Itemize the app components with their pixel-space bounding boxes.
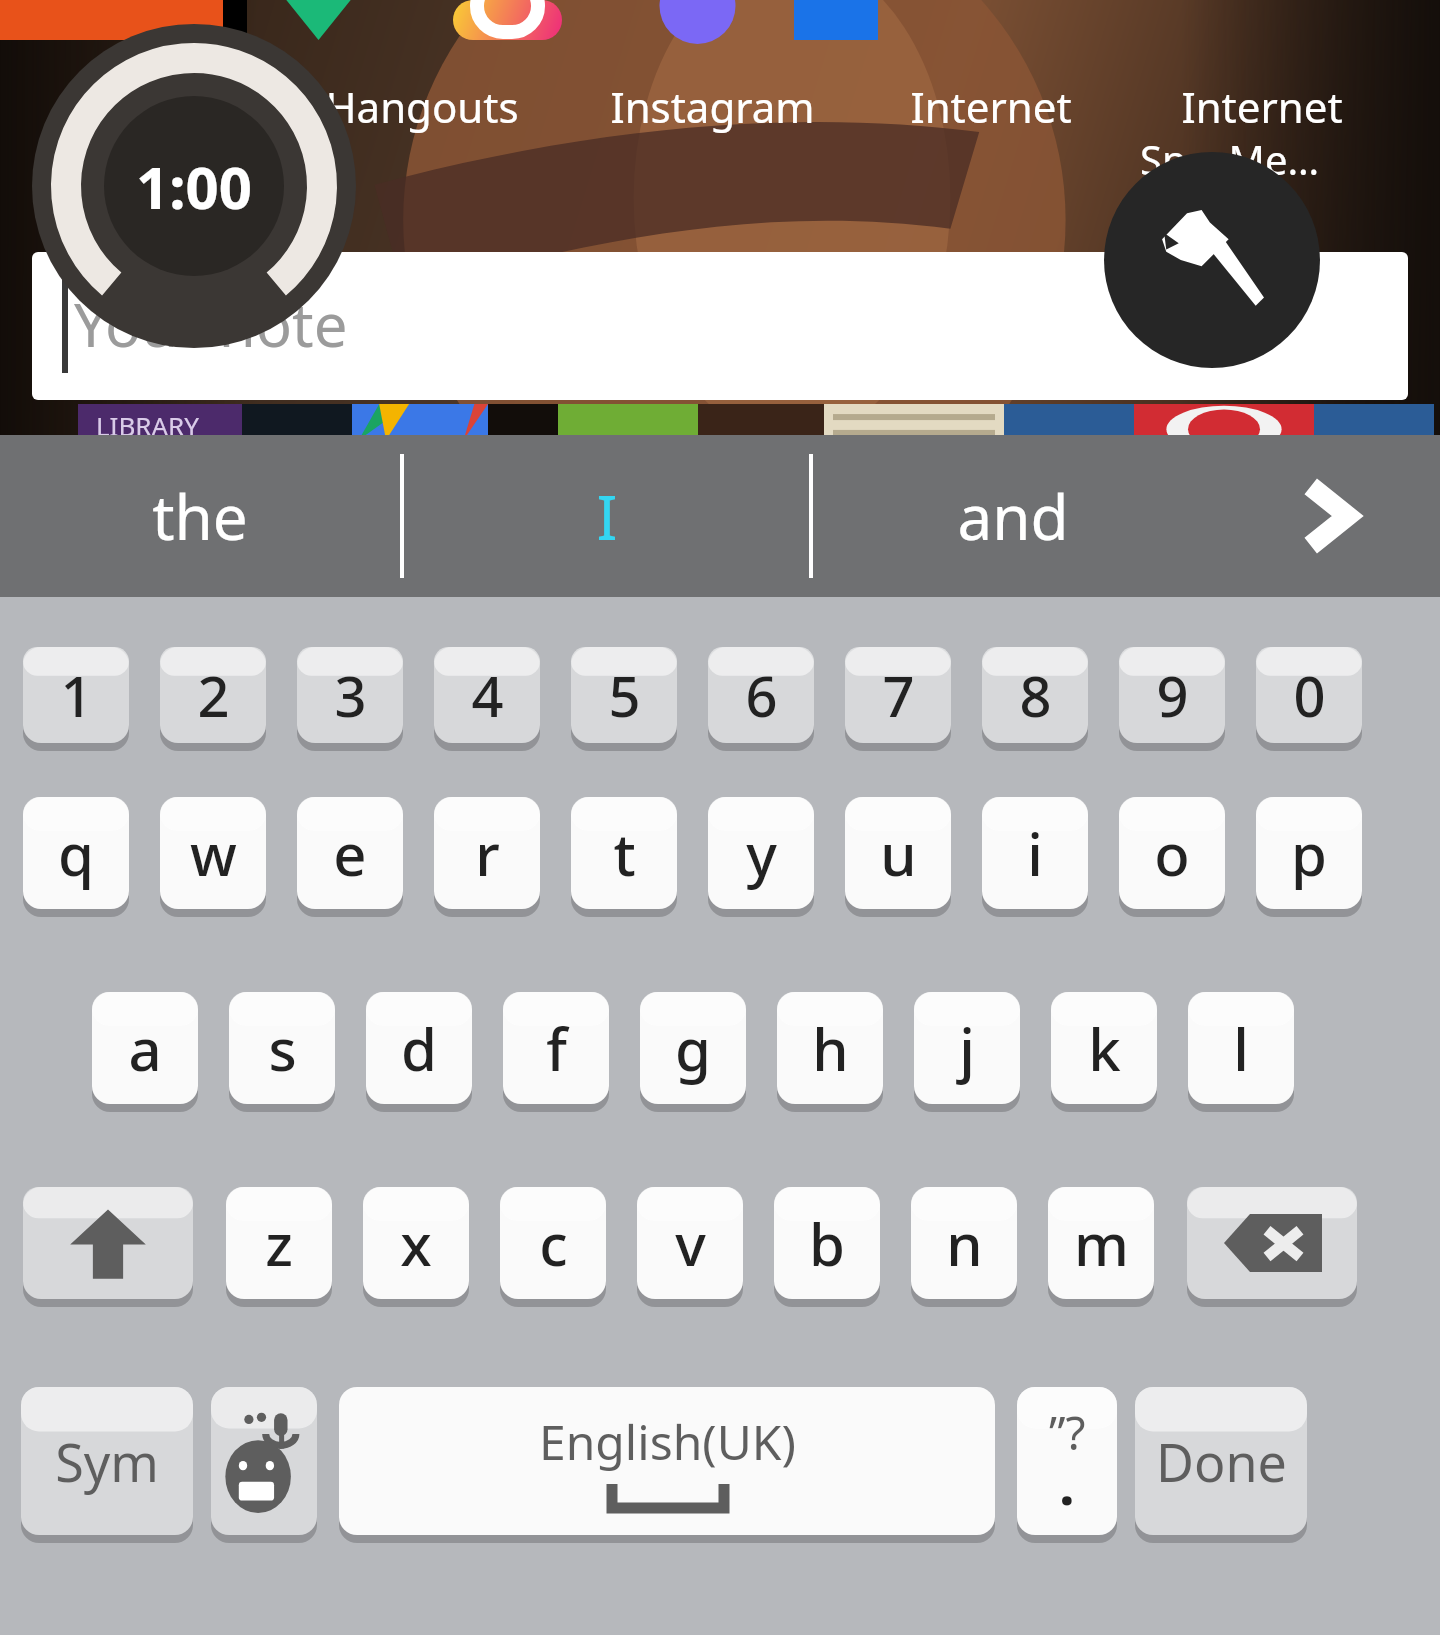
button[interactable]: c <box>500 1187 606 1299</box>
staticText: m <box>1074 1204 1129 1283</box>
staticText: ”? <box>1049 1401 1086 1464</box>
button[interactable]: y <box>708 797 814 909</box>
staticText: 2 <box>197 657 230 733</box>
staticText: e <box>333 814 367 893</box>
button[interactable]: 4 <box>434 647 540 743</box>
button[interactable]: Backspace <box>1187 1187 1357 1299</box>
button[interactable]: 2 <box>160 647 266 743</box>
button[interactable]: w <box>160 797 266 909</box>
button[interactable]: b <box>774 1187 880 1299</box>
button[interactable]: 8 <box>982 647 1088 743</box>
button[interactable]: u <box>845 797 951 909</box>
staticText: 4 <box>471 657 504 733</box>
button[interactable]: 9 <box>1119 647 1225 743</box>
button[interactable]: the <box>0 435 400 597</box>
staticText: x <box>400 1204 432 1283</box>
button[interactable]: r <box>434 797 540 909</box>
button[interactable]: More suggestions <box>1213 435 1440 597</box>
button[interactable]: g <box>640 992 746 1104</box>
button[interactable]: Done <box>1135 1387 1307 1535</box>
staticText: Internet <box>1181 78 1343 135</box>
staticText: and <box>957 474 1069 558</box>
staticText: c <box>539 1204 568 1283</box>
button[interactable]: o <box>1119 797 1225 909</box>
staticText: 7 <box>882 657 915 733</box>
button[interactable]: Your note <box>32 252 1408 400</box>
button[interactable]: x <box>363 1187 469 1299</box>
staticText: y <box>746 814 777 893</box>
button[interactable]: I <box>404 435 809 597</box>
staticText: u <box>880 814 917 893</box>
staticText: t <box>613 814 636 893</box>
button[interactable]: Punctuation <box>1017 1387 1117 1535</box>
button[interactable]: a <box>92 992 198 1104</box>
staticText: b <box>809 1204 845 1283</box>
staticText: 9 <box>1156 657 1189 733</box>
button[interactable]: Pin note <box>1104 152 1320 368</box>
button[interactable]: k <box>1051 992 1157 1104</box>
staticText: Sp… Me… <box>1140 132 1320 186</box>
staticText: Your note <box>74 283 348 365</box>
button[interactable]: j <box>914 992 1020 1104</box>
staticText: 0 <box>1293 657 1326 733</box>
button[interactable]: Sym <box>21 1387 193 1535</box>
staticText: Internet <box>910 78 1072 135</box>
staticText: s <box>268 1009 297 1088</box>
button[interactable]: e <box>297 797 403 909</box>
staticText: n <box>946 1204 983 1283</box>
button[interactable]: Emoji and voice input <box>211 1387 317 1535</box>
staticText: i <box>1027 814 1043 893</box>
staticText: . <box>1059 1445 1075 1521</box>
button[interactable]: and <box>813 435 1213 597</box>
button[interactable]: i <box>982 797 1088 909</box>
button[interactable]: h <box>777 992 883 1104</box>
button[interactable]: m <box>1048 1187 1154 1299</box>
staticText: 1:00 <box>136 147 252 226</box>
staticText: a <box>128 1009 162 1088</box>
staticText: Done <box>1156 1426 1287 1497</box>
button[interactable]: q <box>23 797 129 909</box>
staticText: I <box>596 474 618 558</box>
button[interactable]: 3 <box>297 647 403 743</box>
staticText: p <box>1291 814 1327 893</box>
staticText: Sym <box>55 1426 159 1497</box>
staticText: English(UK) <box>539 1409 796 1474</box>
staticText: l <box>1233 1009 1249 1088</box>
staticText: GTB <box>142 78 224 135</box>
staticText: Hangouts <box>325 78 519 135</box>
button[interactable]: p <box>1256 797 1362 909</box>
staticText: k <box>1088 1009 1121 1088</box>
staticText: v <box>675 1204 706 1283</box>
staticText: h <box>812 1009 849 1088</box>
staticText: 1 <box>60 657 93 733</box>
button[interactable]: 6 <box>708 647 814 743</box>
button[interactable]: n <box>911 1187 1017 1299</box>
staticText: q <box>58 814 94 893</box>
button[interactable]: Space, English (UK) <box>339 1387 995 1535</box>
button[interactable]: 0 <box>1256 647 1362 743</box>
staticText: j <box>959 1009 975 1088</box>
button[interactable]: 1 <box>23 647 129 743</box>
button[interactable]: 7 <box>845 647 951 743</box>
button[interactable]: Shift <box>23 1187 193 1299</box>
staticText: the <box>152 474 248 558</box>
button[interactable]: f <box>503 992 609 1104</box>
button[interactable]: Timer 1:00 <box>32 24 356 348</box>
staticText: z <box>265 1204 293 1283</box>
button[interactable]: d <box>366 992 472 1104</box>
staticText: w <box>190 814 237 893</box>
button[interactable]: t <box>571 797 677 909</box>
button[interactable]: v <box>637 1187 743 1299</box>
button[interactable]: s <box>229 992 335 1104</box>
staticText: d <box>401 1009 437 1088</box>
button[interactable]: z <box>226 1187 332 1299</box>
button[interactable]: 5 <box>571 647 677 743</box>
button[interactable]: l <box>1188 992 1294 1104</box>
staticText: r <box>475 814 500 893</box>
staticText: 5 <box>608 657 641 733</box>
staticText: LIBRARY <box>96 408 200 440</box>
staticText: 6 <box>745 657 778 733</box>
staticText: 3 <box>334 657 367 733</box>
staticText: g <box>675 1009 711 1088</box>
staticText: f <box>546 1009 567 1088</box>
